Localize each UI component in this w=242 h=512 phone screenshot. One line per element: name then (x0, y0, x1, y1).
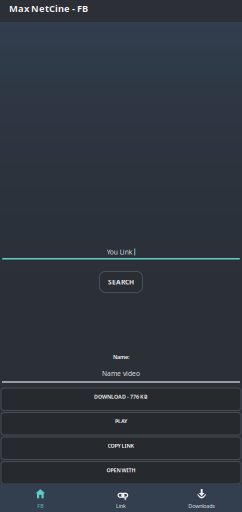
button[interactable]: SEARCH (99, 271, 142, 292)
button[interactable]: Link (81, 484, 161, 512)
staticText: OPEN WITH (106, 467, 135, 474)
button[interactable]: OPEN WITH (1, 461, 241, 484)
staticText: PLAY (115, 418, 127, 425)
staticText: Name: (113, 353, 129, 361)
staticText: FB (37, 502, 43, 510)
button[interactable]: PLAY (1, 412, 241, 435)
staticText: Link (116, 502, 126, 510)
staticText: Max NetCine - FB (9, 2, 88, 15)
button[interactable]: Downloads (161, 484, 242, 512)
staticText: Downloads (188, 502, 215, 510)
staticText: DOWNLOAD - 776 KB (94, 393, 148, 400)
button[interactable]: DOWNLOAD - 776 KB (1, 388, 241, 410)
staticText: You Link (107, 248, 133, 256)
button[interactable]: FB (0, 484, 81, 512)
staticText: COPY LINK (107, 442, 134, 449)
staticText: Name video (102, 369, 140, 378)
button[interactable]: COPY LINK (1, 437, 241, 459)
staticText: SEARCH (108, 278, 134, 286)
